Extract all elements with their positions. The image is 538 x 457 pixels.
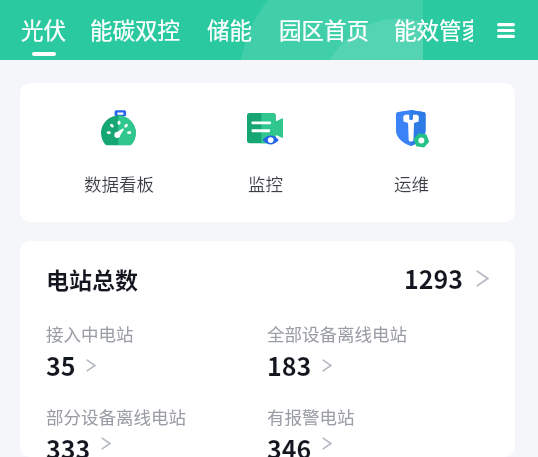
- button[interactable]: 数据看板: [45, 83, 192, 222]
- button[interactable]: 全部设备离线电站: [267, 321, 489, 383]
- button[interactable]: 能碳双控: [90, 0, 181, 60]
- staticText: 电站总数: [46, 262, 138, 295]
- staticText: 有报警电站: [267, 404, 355, 429]
- button[interactable]: 电站总数: [46, 260, 489, 296]
- staticText: 监控: [248, 171, 283, 196]
- staticText: 35: [46, 347, 76, 383]
- button[interactable]: 光伏: [21, 0, 67, 60]
- staticText: 1293: [404, 260, 464, 296]
- button[interactable]: 能效管家: [394, 0, 473, 60]
- staticText: 光伏: [21, 13, 67, 46]
- button[interactable]: 监控: [192, 83, 338, 222]
- staticText: 部分设备离线电站: [46, 404, 186, 429]
- staticText: 运维: [394, 171, 429, 196]
- staticText: 333: [46, 430, 91, 457]
- staticText: 能效管家: [394, 13, 473, 46]
- staticText: 储能: [207, 13, 253, 46]
- button[interactable]: 部分设备离线电站: [46, 404, 267, 457]
- staticText: 全部设备离线电站: [267, 321, 407, 346]
- staticText: 园区首页: [279, 13, 370, 46]
- staticText: 183: [267, 347, 312, 383]
- button[interactable]: Menu: [473, 0, 538, 60]
- button[interactable]: 有报警电站: [267, 404, 489, 457]
- button[interactable]: 储能: [207, 0, 253, 60]
- staticText: 346: [267, 430, 312, 457]
- staticText: 能碳双控: [90, 13, 181, 46]
- button[interactable]: 运维: [338, 83, 484, 222]
- staticText: 接入中电站: [46, 321, 134, 346]
- staticText: 数据看板: [84, 171, 154, 196]
- button[interactable]: 园区首页: [279, 0, 370, 60]
- button[interactable]: 接入中电站: [46, 321, 267, 383]
